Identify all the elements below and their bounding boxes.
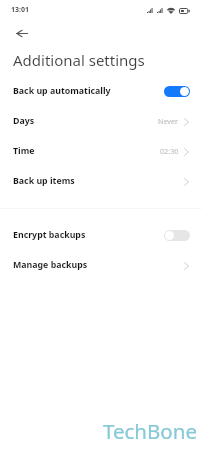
- button[interactable]: Time: [0, 136, 202, 166]
- button[interactable]: Days: [0, 106, 202, 136]
- staticText: Days: [13, 115, 35, 127]
- button[interactable]: Encrypt backups: [0, 220, 202, 250]
- staticText: Never: [158, 116, 179, 126]
- staticText: Manage backups: [13, 259, 88, 271]
- staticText: Additional settings: [13, 50, 145, 70]
- staticText: Back up automatically: [13, 85, 111, 97]
- staticText: 13:01: [11, 5, 29, 15]
- staticText: Back up items: [13, 175, 75, 187]
- button[interactable]: Back: [11, 22, 33, 44]
- staticText: Encrypt backups: [13, 229, 86, 241]
- staticText: 02:30: [160, 146, 179, 156]
- staticText: TechBone: [103, 417, 197, 445]
- staticText: Time: [13, 145, 35, 157]
- button[interactable]: Manage backups: [0, 250, 202, 280]
- button[interactable]: Toggle: [164, 86, 190, 97]
- button[interactable]: Back up automatically: [0, 76, 202, 106]
- button[interactable]: Toggle: [164, 230, 190, 241]
- button[interactable]: Back up items: [0, 166, 202, 196]
